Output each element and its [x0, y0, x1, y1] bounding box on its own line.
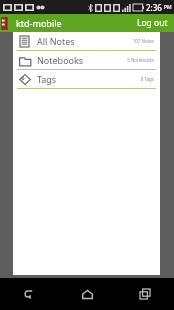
staticText: PM — [164, 4, 172, 11]
staticText: ktd-mobile — [16, 17, 62, 29]
staticText: Tags — [37, 73, 57, 85]
staticText: All Notes — [37, 35, 75, 47]
button[interactable]: All Notes — [13, 32, 160, 50]
staticText: 5 Notebooks — [127, 57, 154, 63]
staticText: 2:36 — [146, 2, 162, 13]
button[interactable]: Tags — [13, 70, 160, 88]
staticText: 0 Tags — [140, 76, 154, 82]
staticText: Notebooks — [37, 54, 84, 66]
other: App icon — [1, 17, 11, 30]
button[interactable]: Notebooks — [13, 51, 160, 69]
staticText: 107 Notes — [132, 38, 154, 44]
button[interactable]: Recent apps — [116, 278, 174, 310]
button[interactable]: Log out — [131, 14, 174, 32]
button[interactable]: Home — [58, 278, 116, 310]
button[interactable]: Back — [0, 278, 58, 310]
staticText: Log out — [137, 17, 168, 29]
